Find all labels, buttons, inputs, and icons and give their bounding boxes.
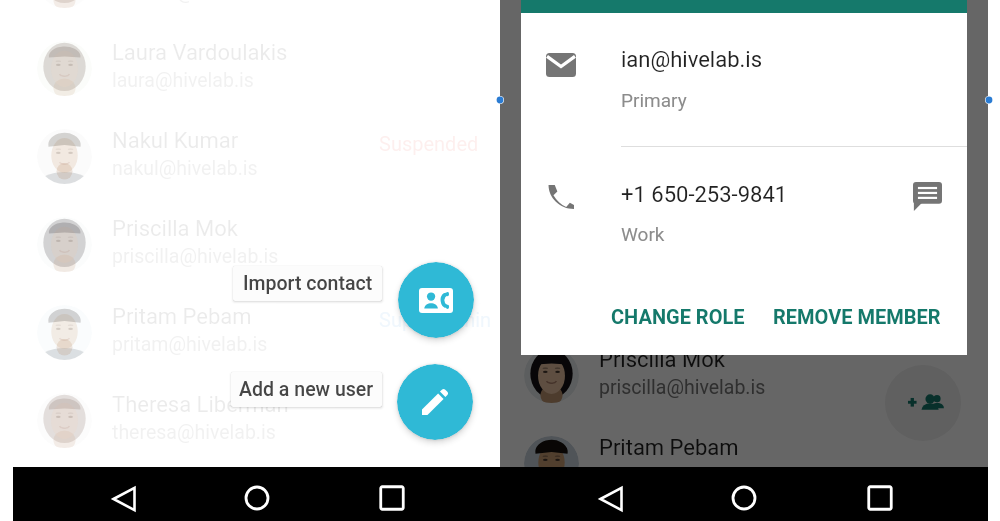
staticText: +1 650-253-9841 bbox=[621, 182, 788, 208]
staticText: priscilla@hivelab.is bbox=[112, 245, 279, 268]
button[interactable]: Pritam Pebam bbox=[13, 279, 500, 367]
staticText: laura@hivelab.is bbox=[599, 288, 741, 311]
button[interactable]: Recent apps bbox=[374, 480, 410, 516]
staticText: nakul@hivelab.is bbox=[599, 200, 745, 223]
staticText: REMOVE MEMBER bbox=[773, 305, 941, 328]
button[interactable]: Add a new user bbox=[231, 372, 382, 407]
button[interactable]: Nakul Kumar bbox=[13, 103, 500, 191]
staticText: Theresa Liberman bbox=[599, 0, 776, 21]
button[interactable]: Home bbox=[726, 480, 762, 516]
staticText: pritam@hivelab.is bbox=[112, 333, 268, 356]
staticText: Super admin bbox=[379, 308, 492, 331]
staticText: CHANGE ROLE bbox=[611, 305, 745, 328]
staticText: Pritam Pebam bbox=[112, 304, 252, 330]
button[interactable]: Laura Vardoulakis bbox=[500, 234, 988, 322]
button[interactable]: Nakul Kumar bbox=[500, 146, 988, 234]
button[interactable]: Priscilla Mok bbox=[500, 322, 988, 410]
staticText: Nakul Kumar bbox=[112, 128, 239, 154]
button[interactable]: Recent apps bbox=[862, 480, 898, 516]
button[interactable]: Back bbox=[593, 481, 629, 517]
button[interactable]: Import contact bbox=[233, 266, 382, 301]
staticText: laura@hivelab.is bbox=[112, 69, 254, 92]
staticText: Nakul Kumar bbox=[599, 171, 726, 197]
staticText: Priscilla Mok bbox=[599, 347, 725, 373]
button[interactable]: Add a new user bbox=[397, 364, 473, 440]
button[interactable]: Pritam Pebam bbox=[500, 410, 988, 498]
staticText: priscilla@hivelab.is bbox=[599, 376, 766, 399]
staticText: Laura Vardoulakis bbox=[599, 83, 775, 109]
button[interactable]: REMOVE MEMBER bbox=[773, 296, 941, 336]
staticText: Add a new user bbox=[239, 378, 374, 401]
staticText: ian@hivelab.is bbox=[621, 47, 763, 73]
staticText: Primary bbox=[621, 89, 687, 111]
button[interactable]: Laura Vardoulakis bbox=[500, 58, 988, 146]
staticText: theresa@hivelab.is bbox=[112, 421, 276, 444]
button[interactable]: Home bbox=[239, 480, 275, 516]
staticText: Suspended bbox=[866, 175, 966, 198]
button[interactable]: Add member bbox=[885, 365, 961, 441]
staticText: Pritam Pebam bbox=[599, 435, 739, 461]
button[interactable]: Import contact bbox=[398, 262, 474, 338]
button[interactable]: Send message bbox=[913, 182, 942, 211]
button[interactable]: Priscilla Mok bbox=[13, 191, 500, 279]
staticText: Work bbox=[621, 223, 665, 245]
button[interactable]: Theresa Liberman bbox=[500, 0, 988, 58]
staticText: Suspended bbox=[379, 132, 479, 155]
button[interactable]: Laura Vardoulakis bbox=[13, 15, 500, 103]
button[interactable]: Theresa Liberman bbox=[13, 0, 500, 15]
staticText: pritam@hivelab.is bbox=[599, 464, 755, 487]
button[interactable]: Theresa Liberman bbox=[13, 367, 500, 455]
button[interactable]: Back bbox=[106, 481, 142, 517]
staticText: Import contact bbox=[243, 272, 373, 295]
button[interactable]: CHANGE ROLE bbox=[611, 296, 745, 336]
staticText: Laura Vardoulakis bbox=[112, 40, 288, 66]
staticText: Theresa Liberman bbox=[112, 392, 289, 418]
staticText: nakul@hivelab.is bbox=[112, 157, 258, 180]
staticText: Priscilla Mok bbox=[112, 216, 238, 242]
